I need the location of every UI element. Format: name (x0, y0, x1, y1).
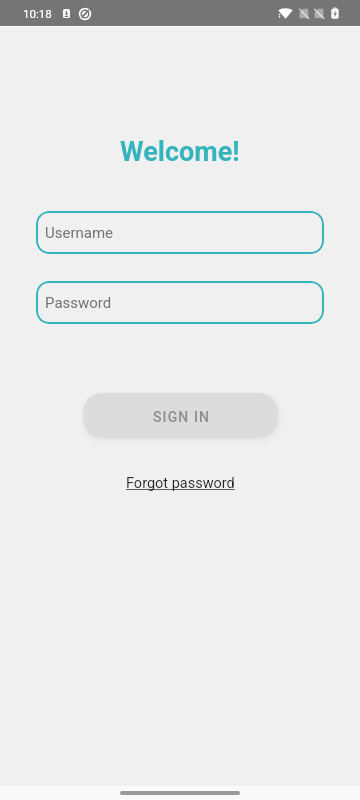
button[interactable]: Password (36, 281, 324, 324)
staticText: 10:18 (23, 7, 52, 20)
staticText: SIGN IN (153, 409, 210, 425)
staticText: Forgot password (126, 475, 235, 492)
button[interactable]: SIGN IN (83, 393, 278, 438)
button[interactable]: Username (36, 211, 324, 254)
button[interactable]: Forgot password (118, 471, 243, 496)
staticText: Username (45, 224, 114, 242)
staticText: Welcome! (120, 136, 240, 168)
staticText: Password (45, 294, 112, 312)
